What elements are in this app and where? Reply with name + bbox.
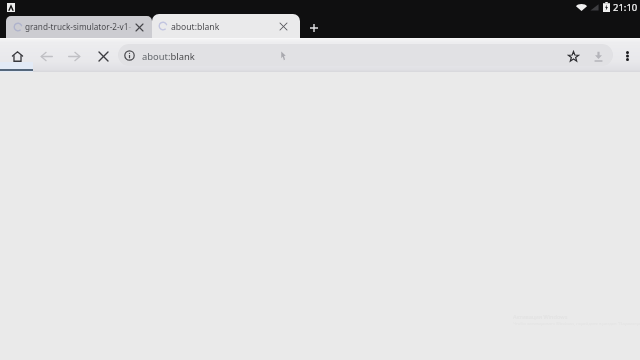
button[interactable]: grand-truck-simulator-2-v1- (6, 16, 152, 38)
button[interactable]: Back (33, 42, 59, 70)
button[interactable]: Stop loading (90, 42, 116, 70)
staticText: about:blank (171, 21, 220, 33)
staticText: about:blank (142, 50, 195, 63)
button[interactable]: about:blank (152, 14, 300, 38)
staticText: 21:10 (613, 1, 638, 14)
button[interactable]: New tab (305, 19, 323, 37)
button[interactable]: Downloads (590, 48, 607, 65)
staticText: grand-truck-simulator-2-v1- (25, 21, 132, 32)
button[interactable]: Close tab (276, 19, 291, 34)
button[interactable]: Home (4, 42, 30, 70)
button[interactable]: Close tab (132, 20, 147, 35)
button[interactable]: about:blank (118, 44, 613, 66)
button[interactable]: Forward (61, 42, 87, 70)
button[interactable]: Bookmark (565, 48, 582, 65)
button[interactable]: More options (618, 47, 636, 65)
